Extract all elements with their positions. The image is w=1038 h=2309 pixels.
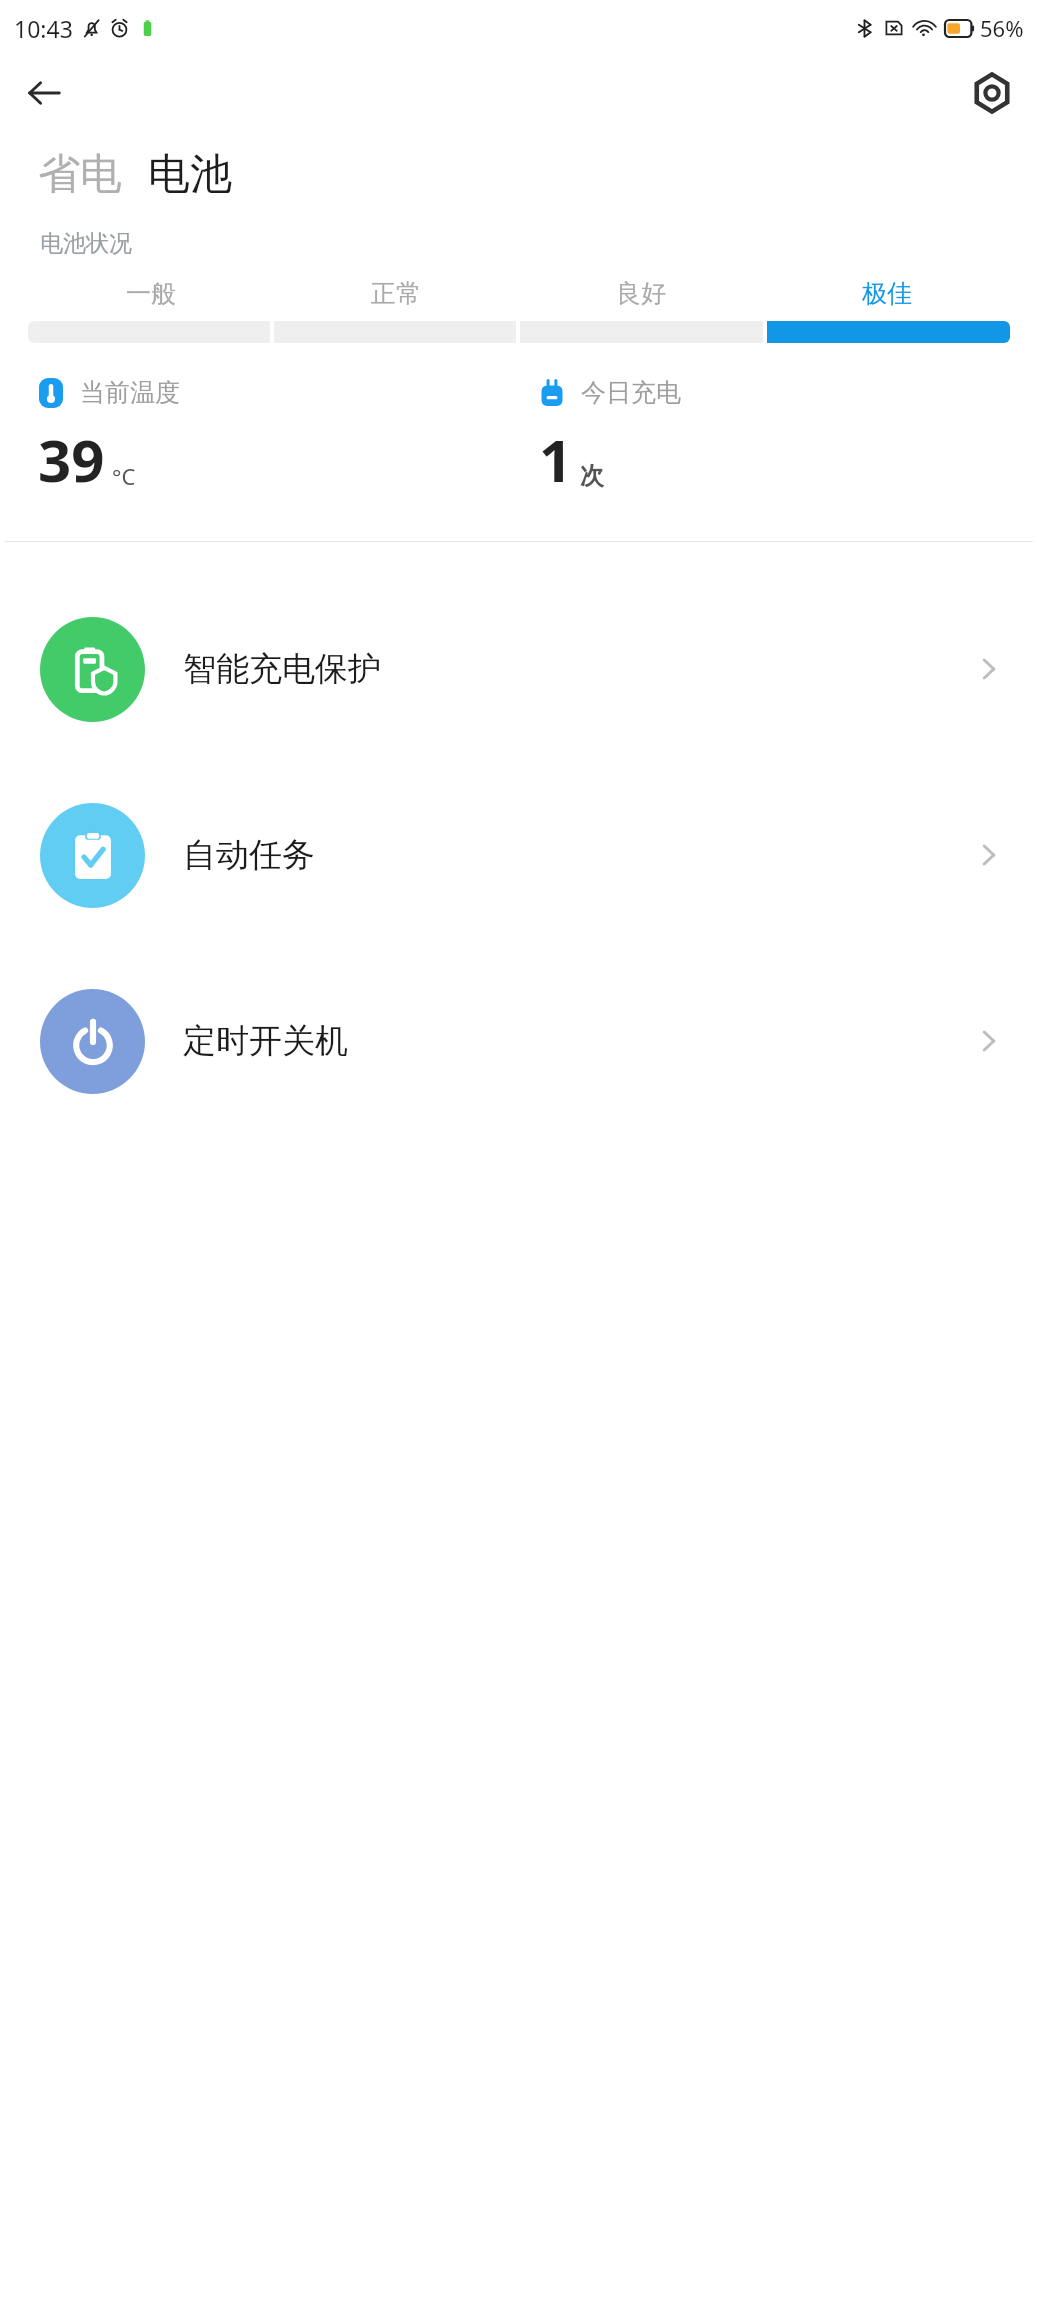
staticText: 智能充电保护 — [183, 648, 381, 690]
staticText: 电池状况 — [40, 229, 132, 258]
staticText: 定时开关机 — [183, 1020, 348, 1062]
button[interactable]: 智能充电保护 — [0, 576, 1038, 762]
staticText: 一般 — [126, 278, 176, 309]
staticText: 电池 — [148, 148, 232, 201]
staticText: 10:43 — [14, 13, 73, 44]
staticText: 1 — [539, 420, 573, 499]
button[interactable]: 省电 — [38, 148, 122, 201]
staticText: 56% — [980, 13, 1024, 43]
button[interactable]: Settings — [964, 65, 1020, 121]
staticText: 次 — [580, 461, 604, 491]
button[interactable]: 电池 — [148, 148, 232, 201]
button[interactable]: 定时开关机 — [0, 948, 1038, 1134]
staticText: 良好 — [616, 278, 666, 309]
staticText: 正常 — [371, 278, 421, 309]
staticText: 39 — [38, 420, 105, 499]
staticText: 今日充电 — [581, 377, 681, 408]
staticText: 自动任务 — [183, 834, 315, 876]
button[interactable]: 自动任务 — [0, 762, 1038, 948]
staticText: °C — [112, 461, 136, 491]
button[interactable]: Back — [16, 65, 72, 121]
staticText: 极佳 — [862, 278, 912, 309]
staticText: 省电 — [38, 148, 122, 201]
staticText: 当前温度 — [80, 377, 180, 408]
